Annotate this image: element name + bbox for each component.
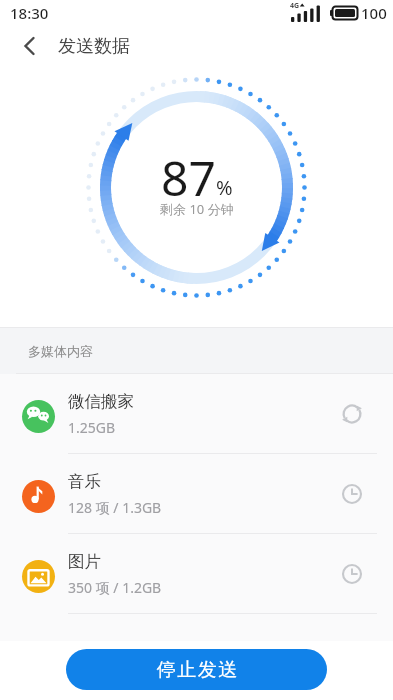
button[interactable]: 图片 bbox=[0, 534, 393, 614]
button[interactable]: 停止发送 bbox=[66, 649, 327, 690]
staticText: 100 bbox=[361, 3, 387, 23]
staticText: 128 项 / 1.3GB bbox=[68, 498, 162, 517]
staticText: 18:30 bbox=[10, 3, 49, 23]
staticText: 微信搬家 bbox=[68, 391, 134, 412]
staticText: 停止发送 bbox=[156, 658, 238, 682]
staticText: 发送数据 bbox=[58, 35, 130, 58]
button[interactable] bbox=[14, 30, 46, 62]
staticText: 1.25GB bbox=[68, 418, 116, 437]
staticText: 87 bbox=[161, 145, 216, 210]
staticText: % bbox=[216, 174, 233, 201]
button[interactable]: 微信搬家 bbox=[0, 374, 393, 454]
staticText: 剩余 10 分钟 bbox=[160, 200, 234, 218]
staticText: 图片 bbox=[68, 551, 101, 572]
staticText: 多媒体内容 bbox=[28, 343, 93, 359]
staticText: 音乐 bbox=[68, 471, 101, 492]
staticText: 350 项 / 1.2GB bbox=[68, 578, 162, 597]
button[interactable]: 音乐 bbox=[0, 454, 393, 534]
staticText: 4G bbox=[290, 1, 300, 11]
